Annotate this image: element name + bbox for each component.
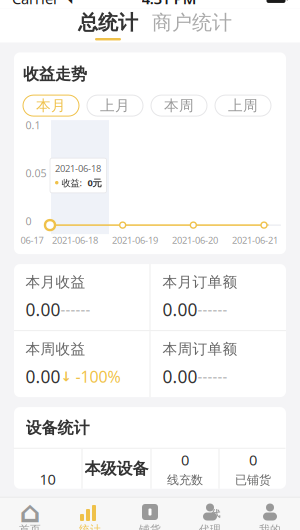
staticText: 0元 [87,176,101,189]
staticText: 0 [25,214,31,228]
staticText: 首页 [19,523,41,530]
staticText: 4:31 PM [142,0,197,8]
staticText: 本月订单额 [162,273,237,291]
staticText: 线充数 [167,473,203,487]
button[interactable]: 上月 [87,95,143,116]
staticText: 收益走势 [23,64,87,84]
staticText: ↓ [60,369,71,384]
button[interactable]: 总统计 [66,8,150,42]
staticText: 0.00 [162,365,197,388]
staticText: 0 [249,450,257,470]
staticText: Carrier [12,0,59,8]
staticText: 设备统计 [25,418,89,438]
staticText: 2021-06-19 [112,234,158,246]
staticText: 0.00 [25,365,60,388]
staticText: 0.00 [25,298,60,321]
staticText: ------ [60,300,90,319]
staticText: 2021-06-18 [52,234,98,246]
button[interactable]: 统计 [60,498,120,530]
staticText: 本月收益 [25,273,85,291]
staticText: 本级设备 [84,459,148,479]
staticText: -100% [71,366,120,387]
staticText: 代理 [199,523,221,530]
staticText: 统计 [79,523,101,530]
staticText: 0.05 [25,166,46,180]
button[interactable]: 上周 [215,95,271,116]
button[interactable]: 商户统计 [150,8,234,42]
staticText: 上周 [228,97,258,115]
staticText: ------ [197,300,227,319]
staticText: 0.1 [25,118,40,132]
staticText: ⌂ [19,495,40,529]
staticText: 0 [181,450,189,470]
staticText: 本周 [164,97,194,115]
button[interactable]: 我的 [240,498,300,530]
staticText: 代 [211,508,220,519]
staticText: 我的 [259,523,281,530]
staticText: 商户统计 [152,10,232,35]
staticText: 0.00 [162,298,197,321]
staticText: 2021-06-18 [55,162,101,174]
staticText: ------ [197,367,227,386]
staticText: 2021-06-20 [172,234,218,246]
staticText: 本月 [36,97,66,115]
staticText: 总统计 [78,10,138,35]
staticText: 06-17 [20,234,43,246]
button[interactable]: 本周 [151,95,207,116]
staticText: 上月 [100,97,130,115]
staticText: 已铺货 [235,473,271,487]
staticText: ◥ [63,0,72,5]
staticText: 收益: [61,176,84,189]
staticText: 本周收益 [25,340,85,358]
button[interactable]: 铺货 [120,498,180,530]
staticText: 铺货 [139,523,161,530]
button[interactable]: 本月 [23,95,79,116]
button[interactable]: 代 [180,498,240,530]
button[interactable]: ⌂ [0,498,60,530]
staticText: 2021-06-21 [232,234,278,246]
staticText: 10 [39,469,55,489]
staticText: 本周订单额 [162,340,237,358]
